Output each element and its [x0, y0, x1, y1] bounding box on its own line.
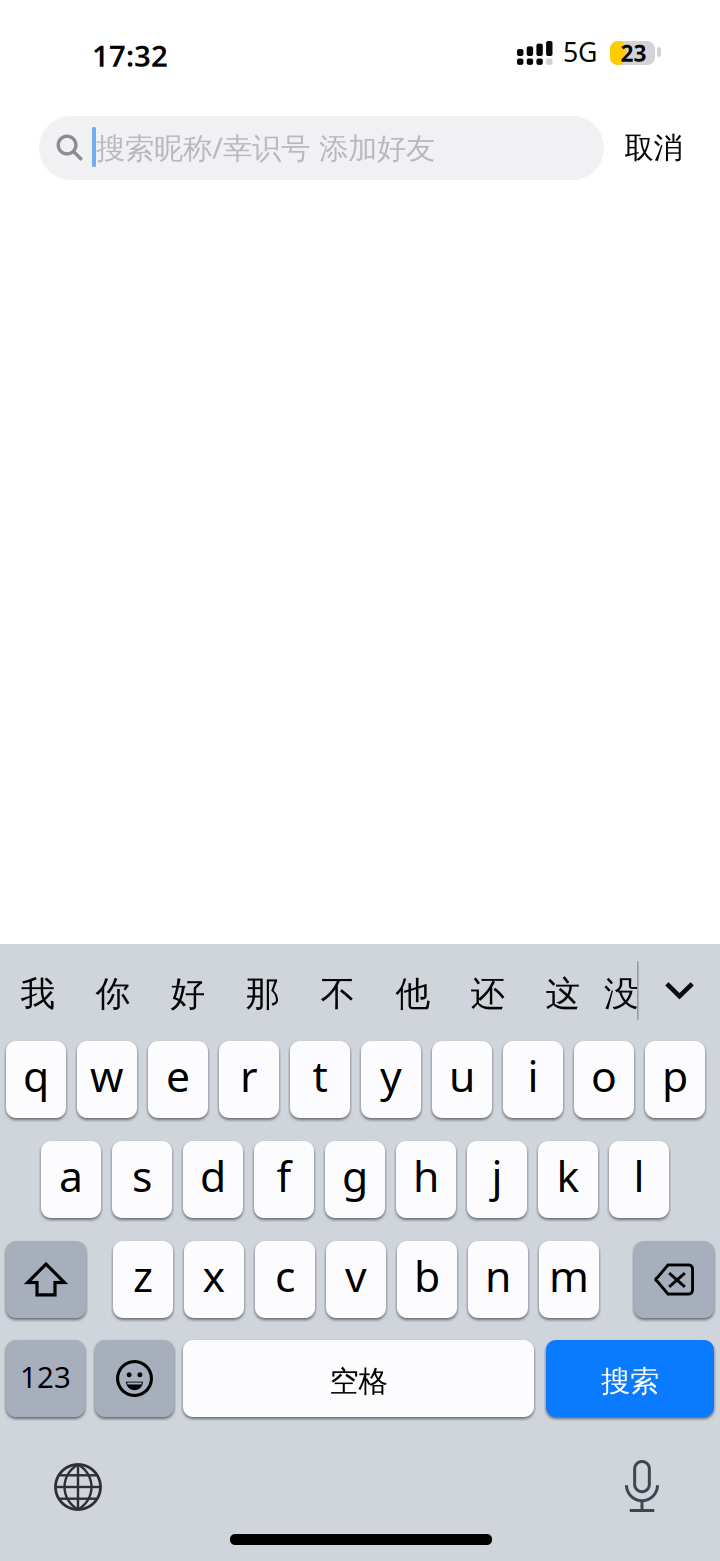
button[interactable]: Dictation: [594, 1438, 690, 1534]
button[interactable]: Emoji: [95, 1340, 174, 1417]
staticText: 没: [604, 973, 639, 1015]
button[interactable]: 没: [589, 960, 653, 1028]
staticText: x: [202, 1247, 225, 1304]
staticText: v: [345, 1247, 367, 1304]
staticText: 不: [320, 973, 355, 1015]
staticText: 那: [245, 973, 280, 1015]
button[interactable]: 这: [531, 960, 595, 1028]
button[interactable]: v: [326, 1241, 386, 1318]
staticText: o: [591, 1047, 617, 1104]
button[interactable]: 你: [81, 960, 145, 1028]
button[interactable]: Switch keyboard: [30, 1439, 126, 1535]
staticText: 23: [620, 38, 646, 68]
staticText: 好: [170, 973, 205, 1015]
staticText: n: [485, 1247, 511, 1304]
staticText: i: [527, 1047, 538, 1104]
staticText: g: [342, 1147, 368, 1204]
staticText: 还: [470, 973, 505, 1015]
staticText: w: [90, 1047, 124, 1104]
staticText: h: [413, 1147, 439, 1204]
staticText: 搜索昵称/幸识号 添加好友: [96, 128, 435, 167]
staticText: q: [23, 1047, 49, 1104]
staticText: k: [556, 1147, 579, 1204]
staticText: y: [380, 1047, 402, 1104]
button[interactable]: e: [148, 1041, 208, 1118]
button[interactable]: m: [539, 1241, 599, 1318]
staticText: m: [549, 1247, 589, 1304]
button[interactable]: Hide keyboard: [647, 955, 712, 1025]
button[interactable]: z: [113, 1241, 173, 1318]
button[interactable]: l: [609, 1141, 669, 1218]
staticText: 他: [395, 973, 430, 1015]
button[interactable]: 空格: [183, 1340, 534, 1417]
staticText: j: [491, 1147, 502, 1204]
button[interactable]: f: [254, 1141, 314, 1218]
staticText: 5G: [563, 34, 597, 69]
staticText: a: [59, 1147, 83, 1204]
button[interactable]: 还: [456, 960, 520, 1028]
button[interactable]: d: [183, 1141, 243, 1218]
button[interactable]: c: [255, 1241, 315, 1318]
button[interactable]: x: [184, 1241, 244, 1318]
button[interactable]: 好: [156, 960, 220, 1028]
button[interactable]: g: [325, 1141, 385, 1218]
button[interactable]: 我: [6, 960, 70, 1028]
staticText: s: [132, 1147, 152, 1204]
staticText: d: [200, 1147, 226, 1204]
button[interactable]: o: [574, 1041, 634, 1118]
staticText: 你: [95, 973, 130, 1015]
staticText: 17:32: [92, 36, 168, 75]
staticText: l: [633, 1147, 644, 1204]
button[interactable]: 那: [231, 960, 295, 1028]
staticText: b: [414, 1247, 440, 1304]
button[interactable]: w: [77, 1041, 137, 1118]
button[interactable]: u: [432, 1041, 492, 1118]
staticText: c: [275, 1247, 295, 1304]
button[interactable]: 取消: [612, 116, 695, 180]
button[interactable]: Shift: [6, 1241, 86, 1318]
staticText: 空格: [329, 1363, 387, 1399]
staticText: f: [276, 1147, 291, 1204]
button[interactable]: j: [467, 1141, 527, 1218]
staticText: 123: [20, 1357, 71, 1396]
button[interactable]: Delete: [634, 1241, 714, 1318]
button[interactable]: t: [290, 1041, 350, 1118]
button[interactable]: q: [6, 1041, 66, 1118]
button[interactable]: r: [219, 1041, 279, 1118]
button[interactable]: b: [397, 1241, 457, 1318]
button[interactable]: 搜索: [546, 1340, 714, 1417]
button[interactable]: h: [396, 1141, 456, 1218]
staticText: 取消: [624, 130, 682, 166]
button[interactable]: k: [538, 1141, 598, 1218]
staticText: 我: [20, 973, 55, 1015]
button[interactable]: i: [503, 1041, 563, 1118]
staticText: p: [662, 1047, 688, 1104]
staticText: r: [240, 1047, 258, 1104]
staticText: 这: [545, 973, 580, 1015]
staticText: 搜索: [601, 1363, 659, 1399]
button[interactable]: a: [41, 1141, 101, 1218]
button[interactable]: y: [361, 1041, 421, 1118]
button[interactable]: 不: [306, 960, 370, 1028]
button[interactable]: p: [645, 1041, 705, 1118]
staticText: t: [312, 1047, 327, 1104]
button[interactable]: 123: [6, 1340, 85, 1417]
staticText: u: [449, 1047, 475, 1104]
staticText: z: [133, 1247, 153, 1304]
button[interactable]: s: [112, 1141, 172, 1218]
button[interactable]: n: [468, 1241, 528, 1318]
staticText: e: [166, 1047, 190, 1104]
button[interactable]: 他: [381, 960, 445, 1028]
